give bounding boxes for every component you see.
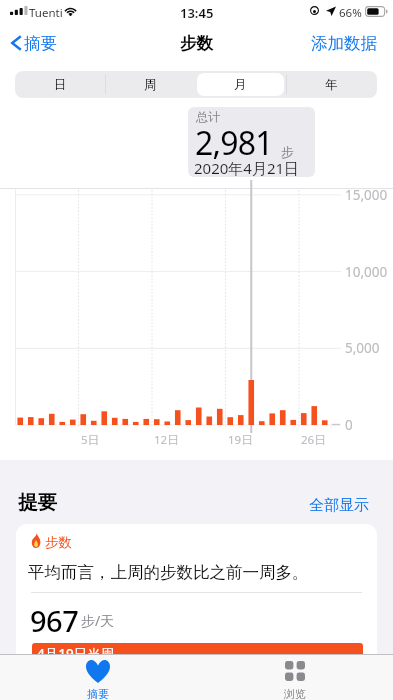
staticText: 日 <box>54 77 67 93</box>
staticText: 总计 <box>196 109 220 124</box>
staticText: 0 <box>345 416 353 434</box>
button[interactable]: 周 <box>105 71 195 98</box>
button[interactable]: 月 <box>195 71 286 98</box>
button[interactable]: 年 <box>286 71 377 98</box>
staticText: 年 <box>325 77 338 93</box>
button[interactable]: 步数 <box>16 524 377 700</box>
staticText: 提要 <box>18 490 57 515</box>
button[interactable]: 浏览 <box>196 654 393 700</box>
staticText: 15,000 <box>345 186 388 204</box>
staticText: 浏览 <box>284 687 306 700</box>
staticText: 5日 <box>81 432 100 448</box>
staticText: 步 <box>281 144 294 160</box>
staticText: 5,000 <box>345 339 380 357</box>
staticText: 摘要 <box>24 33 57 54</box>
staticText: 步数 <box>180 33 213 54</box>
staticText: 26日 <box>301 432 326 448</box>
button[interactable]: 摘要 <box>6 26 67 60</box>
staticText: 平均而言，上周的步数比之前一周多。 <box>28 562 309 583</box>
staticText: 967 <box>30 601 79 640</box>
staticText: 13:45 <box>180 4 214 22</box>
staticText: 19日 <box>228 432 253 448</box>
staticText: 步/天 <box>81 611 115 630</box>
button[interactable]: 日 <box>15 71 105 98</box>
staticText: 摘要 <box>87 687 109 700</box>
staticText: 周 <box>144 77 157 93</box>
staticText: 10,000 <box>345 263 388 281</box>
button[interactable]: 添加数据 <box>299 33 393 54</box>
staticText: 12日 <box>154 432 179 448</box>
staticText: 66% <box>339 5 362 21</box>
staticText: Tuenti <box>29 5 63 21</box>
staticText: 月 <box>234 77 247 93</box>
staticText: 2020年4月21日 <box>194 158 300 177</box>
staticText: 2,981 <box>195 121 273 165</box>
staticText: 步数 <box>45 534 72 551</box>
staticText: 4月19日当周 <box>37 645 115 663</box>
button[interactable]: 摘要 <box>0 654 196 700</box>
